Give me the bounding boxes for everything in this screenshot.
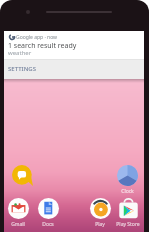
staticText: 1 search result ready bbox=[8, 41, 77, 51]
button[interactable]: Google app · now bbox=[4, 31, 144, 59]
button[interactable]: Gmail bbox=[3, 198, 33, 228]
button[interactable]: Clock bbox=[112, 165, 142, 195]
button[interactable]: SETTINGS bbox=[4, 60, 144, 79]
staticText: SETTINGS bbox=[8, 65, 36, 73]
staticText: Clock bbox=[121, 188, 134, 195]
button[interactable]: Play Store bbox=[113, 198, 143, 228]
staticText: Docs bbox=[42, 221, 54, 228]
staticText: Gmail bbox=[11, 221, 25, 228]
staticText: weather bbox=[8, 49, 32, 57]
button[interactable]: Allo bbox=[12, 165, 33, 186]
button[interactable]: Docs bbox=[33, 198, 63, 228]
button[interactable]: Play Music bbox=[85, 198, 115, 228]
staticText: Google app · now bbox=[16, 34, 58, 41]
staticText: Play bbox=[95, 221, 105, 228]
staticText: Play Store bbox=[116, 221, 140, 228]
